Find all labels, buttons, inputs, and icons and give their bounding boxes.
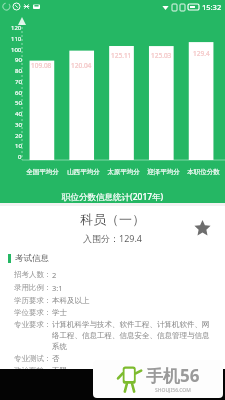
staticText: 2: [52, 270, 57, 280]
staticText: 0: [18, 153, 22, 161]
staticText: 50: [15, 99, 22, 107]
staticText: 120: [11, 24, 22, 32]
staticText: 110: [11, 35, 22, 43]
staticText: 专业测试：: [14, 354, 52, 363]
staticText: 录用比例：: [14, 283, 52, 292]
staticText: 不限: [52, 366, 67, 375]
staticText: SHOUJI56.COM: [155, 387, 191, 394]
staticText: 10: [15, 142, 22, 150]
staticText: 手机56: [146, 364, 200, 387]
staticText: 100: [11, 46, 22, 54]
staticText: 入围分：129.4: [83, 232, 143, 244]
staticText: 太原平均分: [107, 168, 140, 176]
staticText: 129.4: [193, 49, 210, 58]
staticText: 本职位分数: [187, 168, 220, 176]
staticText: 40: [15, 110, 22, 118]
staticText: 考试信息: [15, 253, 49, 264]
staticText: 计算机科学与技术、软件工程、计算机软件、网络工程、信息工程、信息安全、信息管理与…: [52, 320, 215, 351]
staticText: 3:1: [52, 283, 63, 293]
staticText: 迎泽平均分: [147, 168, 180, 176]
staticText: 109.08: [31, 61, 52, 70]
staticText: 120.04: [71, 61, 92, 70]
staticText: 学位要求：: [14, 308, 52, 317]
staticText: 15:32: [202, 2, 222, 12]
staticText: 招考人数：: [14, 270, 52, 279]
staticText: 专业要求：: [14, 320, 52, 329]
staticText: 山西平均分: [67, 168, 100, 176]
staticText: 学士: [52, 308, 67, 317]
staticText: 学历要求：: [14, 296, 52, 305]
staticText: 125.03: [151, 51, 172, 60]
staticText: 科员（一）: [80, 211, 145, 227]
staticText: 60: [15, 89, 22, 97]
button[interactable]: 收藏: [189, 215, 215, 241]
staticText: 本科及以上: [52, 296, 90, 305]
staticText: 80: [15, 67, 22, 75]
button[interactable]: 最近任务: [100, 372, 126, 398]
staticText: 30: [15, 121, 22, 129]
staticText: 90: [15, 56, 22, 64]
staticText: 20: [15, 132, 22, 140]
staticText: 70: [15, 78, 22, 86]
staticText: 否: [52, 354, 60, 363]
staticText: 政治面貌：: [14, 366, 52, 375]
staticText: 全国平均分: [26, 168, 59, 176]
staticText: 职位分数信息统计(2017年): [62, 191, 164, 203]
staticText: 125.11: [111, 51, 132, 60]
